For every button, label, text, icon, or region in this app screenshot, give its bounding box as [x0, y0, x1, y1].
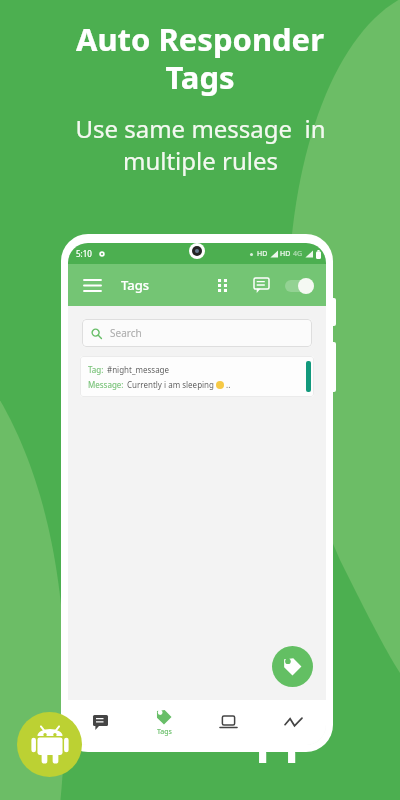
- button[interactable]: Messages: [68, 700, 132, 745]
- staticText: Search: [110, 326, 142, 340]
- staticText: Use same message in multiple rules: [75, 112, 326, 177]
- staticText: Tags: [121, 276, 150, 294]
- staticText: HD: [257, 249, 268, 259]
- staticText: Currently i am sleeping: [127, 379, 214, 390]
- staticText: Tag:: [88, 364, 104, 375]
- button[interactable]: Statistics: [261, 700, 326, 745]
- button[interactable]: Apps: [209, 272, 235, 298]
- staticText: #night_message: [107, 364, 170, 375]
- button[interactable]: Tags: [132, 700, 196, 745]
- button[interactable]: Tag:: [80, 356, 314, 397]
- button[interactable]: Search: [82, 319, 312, 347]
- staticText: OfficeApp: [87, 703, 314, 766]
- staticText: Message:: [88, 379, 124, 390]
- staticText: 4G: [293, 249, 303, 259]
- button[interactable]: Menu: [80, 273, 104, 297]
- button[interactable]: Devices: [196, 700, 261, 745]
- staticText: 5:10: [76, 248, 92, 259]
- button[interactable]: Messages: [248, 272, 274, 298]
- button[interactable]: Enable auto responder: [285, 277, 314, 294]
- staticText: HD: [280, 249, 291, 259]
- staticText: ..: [226, 379, 231, 390]
- staticText: Auto Responder Tags: [76, 18, 324, 98]
- button[interactable]: Add tag: [272, 646, 313, 687]
- staticText: Tags: [157, 727, 172, 737]
